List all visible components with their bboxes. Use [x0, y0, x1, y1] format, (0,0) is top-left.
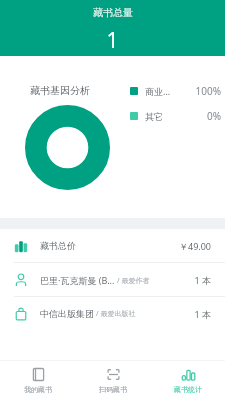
staticText: / 最爱作者 — [117, 276, 150, 286]
other: 藏书统计 — [180, 366, 196, 382]
staticText: 藏书基因分析 — [30, 84, 90, 97]
staticText: 1 — [106, 26, 119, 55]
other: Favourite publisher — [14, 307, 28, 321]
staticText: 藏书总价 — [40, 240, 76, 251]
staticText: 扫码藏书 — [99, 385, 127, 394]
button[interactable]: Favourite author — [0, 263, 225, 296]
button[interactable]: Total price — [0, 229, 225, 262]
staticText: 我的藏书 — [24, 385, 52, 394]
staticText: 巴里·瓦克斯曼 (B... — [40, 274, 115, 286]
other: Total price — [14, 239, 28, 253]
other: 扫码藏书 — [105, 366, 121, 382]
button[interactable]: Favourite publisher — [0, 297, 225, 330]
staticText: 1 本 — [194, 308, 211, 320]
staticText: 藏书总量 — [93, 6, 133, 19]
other: 我的藏书 — [30, 366, 46, 382]
staticText: ￥49.00 — [178, 240, 211, 252]
staticText: / 最爱出版社 — [96, 309, 136, 319]
button[interactable]: 扫码藏书 — [75, 360, 150, 400]
staticText: 藏书统计 — [174, 385, 202, 394]
button[interactable]: 藏书统计 — [150, 360, 225, 400]
other: Favourite author — [14, 273, 28, 287]
staticText: 其它 — [145, 111, 163, 122]
staticText: 中信出版集团 — [40, 308, 94, 319]
button[interactable]: 我的藏书 — [0, 360, 75, 400]
staticText: 100% — [187, 84, 221, 98]
staticText: 1 本 — [194, 274, 211, 286]
staticText: 0% — [187, 109, 221, 123]
staticText: 商业... — [145, 85, 171, 97]
